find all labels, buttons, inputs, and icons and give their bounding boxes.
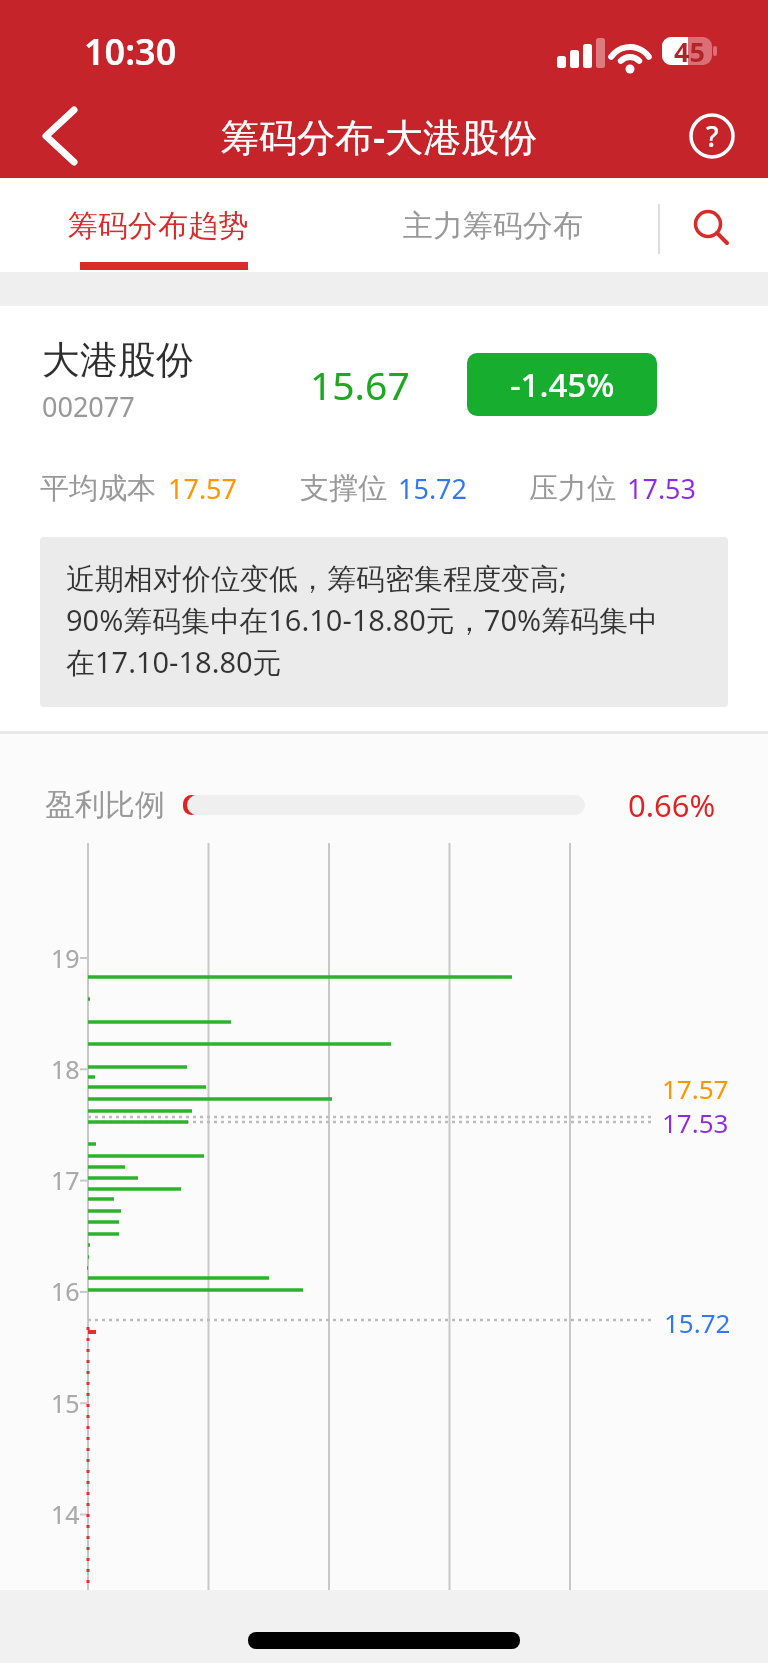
button[interactable]: ? — [688, 112, 736, 160]
button[interactable]: 筹码分布趋势 — [63, 198, 253, 254]
staticText: 90%筹码集中在16.10-18.80元，70%筹码集中 — [66, 600, 658, 640]
staticText: 002077 — [42, 388, 135, 422]
staticText: 15.72 — [398, 470, 468, 506]
staticText: 平均成本 — [40, 470, 156, 506]
staticText: 支撑位 — [300, 470, 387, 506]
staticText: 近期相对价位变低，筹码密集程度变高; — [66, 558, 567, 598]
staticText: 筹码分布趋势 — [68, 207, 248, 245]
staticText: 筹码分布-大港股份 — [221, 110, 538, 162]
staticText: -1.45% — [510, 362, 615, 407]
staticText: 16 — [51, 1274, 80, 1308]
staticText: 14 — [51, 1497, 80, 1531]
staticText: 15.72 — [664, 1305, 731, 1340]
staticText: 压力位 — [529, 470, 616, 506]
staticText: 在17.10-18.80元 — [66, 642, 282, 682]
staticText: 17 — [51, 1163, 80, 1197]
staticText: 45 — [674, 33, 705, 69]
staticText: 17.53 — [662, 1105, 729, 1140]
staticText: 盈利比例 — [45, 786, 165, 824]
staticText: 主力筹码分布 — [403, 207, 583, 245]
staticText: 19 — [51, 941, 80, 975]
button[interactable]: -1.45% — [467, 353, 657, 416]
staticText: ? — [706, 117, 719, 155]
staticText: 17.53 — [627, 470, 697, 506]
button[interactable] — [20, 100, 96, 172]
staticText: 18 — [51, 1052, 80, 1086]
staticText: 15 — [51, 1386, 80, 1420]
button[interactable] — [684, 202, 736, 254]
staticText: 0.66% — [628, 784, 716, 826]
staticText: 10:30 — [84, 27, 177, 76]
staticText: 17.57 — [662, 1071, 729, 1106]
staticText: 15.67 — [310, 358, 410, 410]
staticText: 大港股份 — [42, 336, 194, 384]
staticText: 17.57 — [168, 470, 238, 506]
button[interactable]: 主力筹码分布 — [398, 198, 588, 254]
